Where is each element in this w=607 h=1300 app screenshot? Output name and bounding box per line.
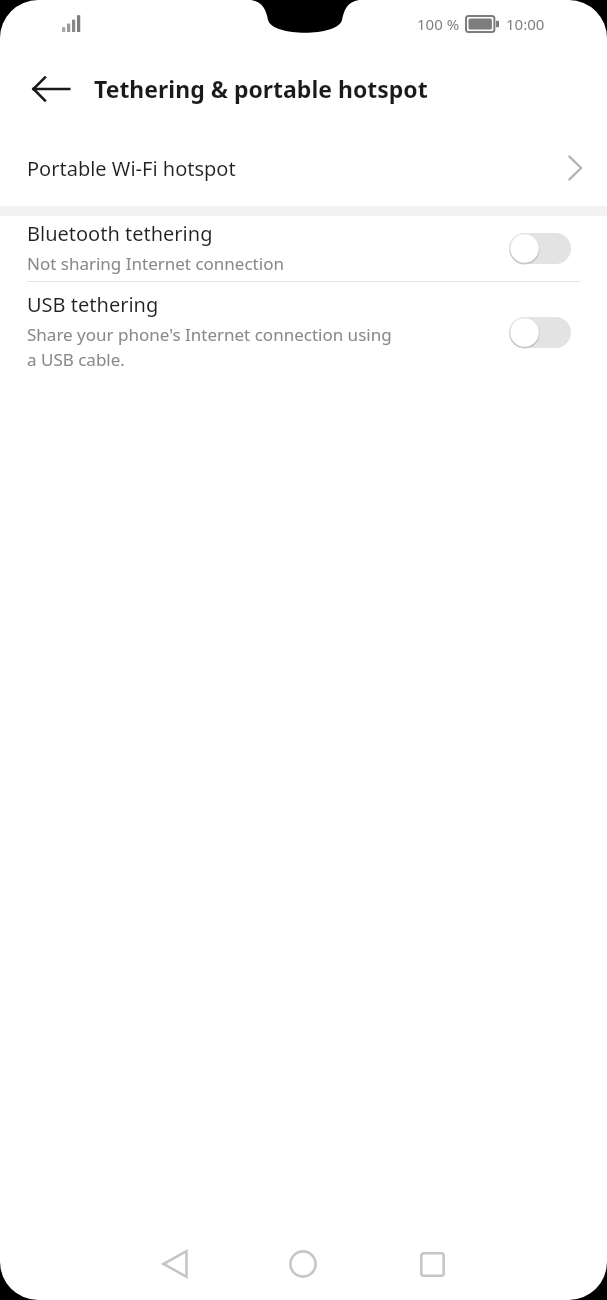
staticText: USB tethering [27, 291, 159, 318]
button[interactable]: USB tethering [509, 317, 571, 348]
staticText: Share your phone's Internet connection u… [27, 323, 392, 346]
staticText: 10:00 [506, 14, 545, 34]
button[interactable]: USB tethering [0, 282, 607, 382]
staticText: Not sharing Internet connection [27, 252, 284, 275]
button[interactable]: Bluetooth tethering [509, 233, 571, 264]
staticText: Tethering & portable hotspot [94, 73, 428, 104]
button[interactable]: Bluetooth tethering [0, 216, 607, 281]
staticText: 100 % [417, 14, 460, 34]
button[interactable]: Recent apps [403, 1235, 461, 1293]
button[interactable]: Home [274, 1235, 332, 1293]
button[interactable]: Back [18, 56, 84, 122]
staticText: Bluetooth tethering [27, 220, 213, 247]
staticText: a USB cable. [27, 348, 125, 371]
button[interactable]: Portable Wi-Fi hotspot [0, 130, 607, 206]
button[interactable]: Back [146, 1235, 204, 1293]
staticText: Portable Wi-Fi hotspot [27, 155, 236, 182]
